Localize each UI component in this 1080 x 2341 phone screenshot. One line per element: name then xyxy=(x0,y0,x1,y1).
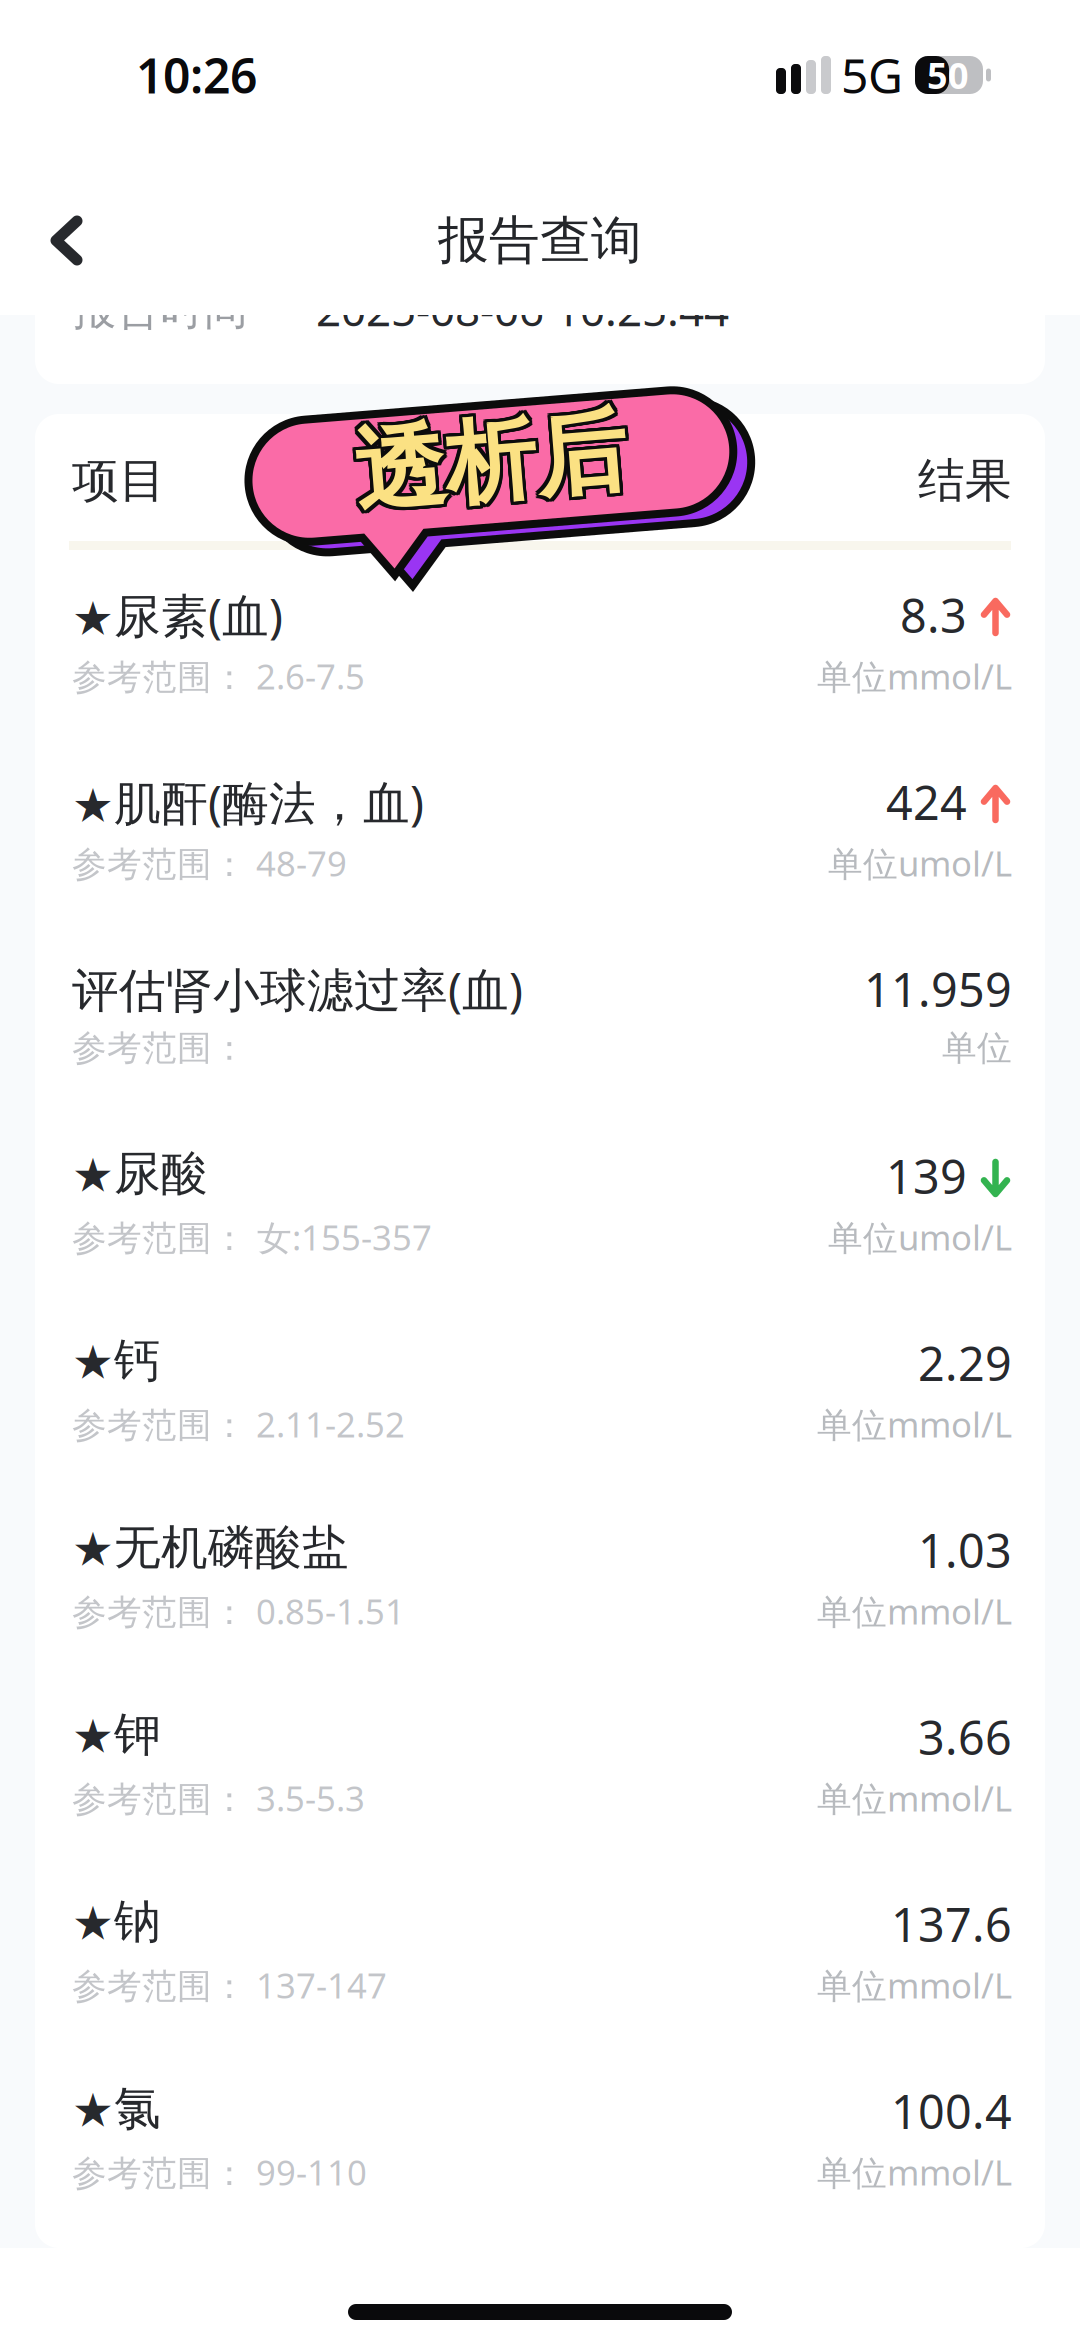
staticText: 参考范围： 99-110 xyxy=(72,2149,367,2195)
staticText: 透析后 xyxy=(356,405,629,517)
button[interactable]: 返回 xyxy=(0,150,124,292)
staticText: 透析后 xyxy=(355,404,628,515)
staticText: 2.29 xyxy=(918,1332,1012,1394)
button[interactable]: ★钙 xyxy=(35,1332,1045,1519)
staticText: ★无机磷酸盐 xyxy=(72,1519,349,1576)
staticText: 透析后 xyxy=(353,408,626,520)
button[interactable]: ★肌酐(酶法，血) xyxy=(35,771,1045,958)
staticText: 透析后 xyxy=(356,408,629,520)
staticText: 11.959 xyxy=(864,958,1012,1020)
staticText: 3.66 xyxy=(918,1706,1012,1768)
staticText: 透析后 xyxy=(353,404,626,515)
staticText: 参考范围： 2.6-7.5 xyxy=(72,653,365,699)
staticText: ★尿酸 xyxy=(72,1145,208,1202)
staticText: 透析后 xyxy=(359,402,632,514)
staticText: 单位mmol/L xyxy=(817,1962,1012,2008)
staticText: ★肌酐(酶法，血) xyxy=(72,771,424,833)
staticText: 透析后 xyxy=(358,404,631,515)
staticText: 透析后 xyxy=(358,405,631,517)
staticText: 透析后 xyxy=(355,405,628,517)
staticText: 单位umol/L xyxy=(828,1214,1012,1260)
staticText: 报告时间 xyxy=(72,282,248,336)
staticText: 评估肾小球滤过率(血) xyxy=(72,958,523,1020)
staticText: 10:26 xyxy=(136,43,257,107)
staticText: 透析后 xyxy=(359,404,632,515)
staticText: 透析后 xyxy=(355,407,628,518)
staticText: 透析后 xyxy=(355,402,628,514)
staticText: 单位mmol/L xyxy=(817,1401,1012,1447)
button[interactable]: ★尿酸 xyxy=(35,1145,1045,1332)
staticText: ★钠 xyxy=(72,1893,161,1950)
button[interactable]: ★氯 xyxy=(35,2080,1045,2267)
button[interactable]: ★尿素(血) xyxy=(35,584,1045,771)
staticText: ★钾 xyxy=(72,1706,161,1763)
staticText: 透析后 xyxy=(356,407,629,518)
staticText: 透析后 xyxy=(355,408,628,520)
staticText: 透析后 xyxy=(359,407,632,518)
staticText: 5G xyxy=(841,43,903,107)
staticText: 参考范围： 0.85-1.51 xyxy=(72,1588,405,1634)
button[interactable]: 评估肾小球滤过率(血) xyxy=(35,958,1045,1145)
staticText: 单位umol/L xyxy=(828,840,1012,886)
staticText: 透析后 xyxy=(356,405,629,517)
staticText: 单位mmol/L xyxy=(817,1588,1012,1634)
staticText: 单位mmol/L xyxy=(817,2149,1012,2195)
staticText: ★氯 xyxy=(72,2080,161,2137)
staticText: 透析后 xyxy=(353,405,626,517)
staticText: 139 xyxy=(886,1145,967,1207)
staticText: 透析后 xyxy=(359,405,632,517)
staticText: 单位 xyxy=(942,1027,1012,1070)
staticText: 单位mmol/L xyxy=(817,653,1012,699)
staticText: 参考范围： 137-147 xyxy=(72,1962,387,2008)
staticText: 透析后 xyxy=(358,402,631,514)
staticText: 参考范围： 2.11-2.52 xyxy=(72,1401,405,1447)
staticText: 透析后 xyxy=(359,408,632,520)
staticText: 参考范围： 48-79 xyxy=(72,840,347,886)
staticText: ★尿素(血) xyxy=(72,584,283,646)
staticText: 参考范围： 女:155-357 xyxy=(72,1214,432,1260)
staticText: ★钙 xyxy=(72,1332,161,1389)
staticText: 透析后 xyxy=(356,404,629,515)
staticText: 透析后 xyxy=(353,402,626,514)
staticText: 透析后 xyxy=(358,407,631,518)
staticText: 100.4 xyxy=(891,2080,1012,2142)
staticText: 2025-08-06 10:25:44 xyxy=(316,280,729,338)
staticText: 424 xyxy=(886,771,967,833)
staticText: 透析后 xyxy=(356,402,629,514)
staticText: 8.3 xyxy=(900,584,967,646)
staticText: 单位mmol/L xyxy=(817,1775,1012,1821)
staticText: 结果 xyxy=(918,452,1012,509)
staticText: 参考范围： 3.5-5.3 xyxy=(72,1775,365,1821)
staticText: 透析后 xyxy=(353,407,626,518)
button[interactable]: ★钾 xyxy=(35,1706,1045,1893)
staticText: 报告查询 xyxy=(438,209,642,272)
staticText: 项目 xyxy=(72,452,166,509)
staticText: 1.03 xyxy=(918,1519,1012,1581)
button[interactable]: ★无机磷酸盐 xyxy=(35,1519,1045,1706)
staticText: 透析后 xyxy=(358,408,631,520)
staticText: 50 xyxy=(927,51,969,99)
button[interactable]: ★钠 xyxy=(35,1893,1045,2080)
staticText: 参考范围： xyxy=(72,1027,247,1070)
staticText: 137.6 xyxy=(891,1893,1012,1955)
